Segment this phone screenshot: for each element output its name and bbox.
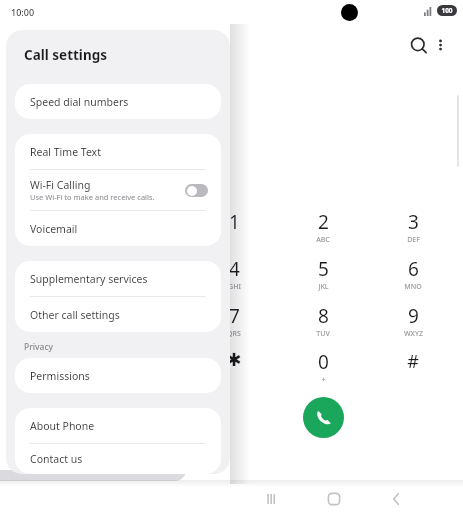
staticText: Real Time Text <box>30 145 101 159</box>
button[interactable]: Recent apps <box>258 485 286 513</box>
staticText: Privacy <box>24 341 54 353</box>
staticText: About Phone <box>30 419 95 433</box>
staticText: 1 <box>229 209 240 235</box>
button[interactable]: 1 <box>200 209 268 251</box>
staticText: # <box>407 349 419 374</box>
staticText: 8 <box>318 303 329 329</box>
staticText: Call settings <box>24 46 107 64</box>
button[interactable]: ✱ <box>200 349 268 391</box>
button[interactable]: Contact us <box>15 444 221 474</box>
staticText: QRS <box>227 329 241 339</box>
button[interactable]: About Phone <box>15 408 221 443</box>
staticText: 2 <box>318 209 329 235</box>
staticText: Supplementary services <box>30 272 148 286</box>
staticText: Other call settings <box>30 308 120 322</box>
staticText: 100 <box>441 6 453 15</box>
button[interactable]: Other call settings <box>15 297 221 332</box>
button[interactable]: Search <box>407 34 431 58</box>
staticText: 5 <box>318 256 329 282</box>
staticText: 0 <box>318 349 329 375</box>
staticText: MNO <box>404 282 422 292</box>
button[interactable]: 5 <box>289 256 357 298</box>
button[interactable]: Speed dial numbers <box>15 84 221 119</box>
staticText: Speed dial numbers <box>30 95 129 109</box>
staticText: TUV <box>316 329 330 339</box>
button[interactable]: More options <box>429 34 453 58</box>
button[interactable]: Supplementary services <box>15 261 221 296</box>
button[interactable]: 6 <box>379 256 447 298</box>
button[interactable]: 9 <box>379 303 447 345</box>
button[interactable]: # <box>379 349 447 391</box>
staticText: Permissions <box>30 369 90 383</box>
staticText: JKL <box>318 282 329 292</box>
button[interactable]: Real Time Text <box>15 134 221 169</box>
button[interactable]: 2 <box>289 209 357 251</box>
button[interactable]: Wi-Fi Calling <box>15 170 221 210</box>
staticText: + <box>321 375 326 385</box>
staticText: Contact us <box>30 452 83 466</box>
staticText: Use Wi-Fi to make and receive calls. <box>30 192 155 202</box>
staticText: 7 <box>229 303 240 329</box>
button[interactable]: 0 <box>289 349 357 391</box>
staticText: ✱ <box>226 349 242 370</box>
staticText: 6 <box>408 256 419 282</box>
other: Wi-Fi Calling toggle <box>185 184 208 197</box>
staticText: 3 <box>408 209 419 235</box>
button[interactable]: Voicemail <box>15 211 221 246</box>
staticText: Voicemail <box>30 222 78 236</box>
button[interactable]: 7 <box>200 303 268 345</box>
staticText: GHI <box>228 282 241 292</box>
button[interactable]: 4 <box>200 256 268 298</box>
staticText: DEF <box>407 235 420 245</box>
staticText: 10:00 <box>11 6 35 18</box>
staticText: 9 <box>408 303 419 329</box>
button[interactable]: 3 <box>379 209 447 251</box>
staticText: WXYZ <box>404 329 423 339</box>
button[interactable]: 8 <box>289 303 357 345</box>
staticText: ABC <box>316 235 330 245</box>
staticText: Wi-Fi Calling <box>30 178 91 192</box>
staticText: 4 <box>229 256 240 282</box>
button[interactable]: Back <box>382 485 410 513</box>
button[interactable]: Home <box>320 485 348 513</box>
button[interactable]: Permissions <box>15 358 221 393</box>
button[interactable]: Call <box>303 397 344 438</box>
